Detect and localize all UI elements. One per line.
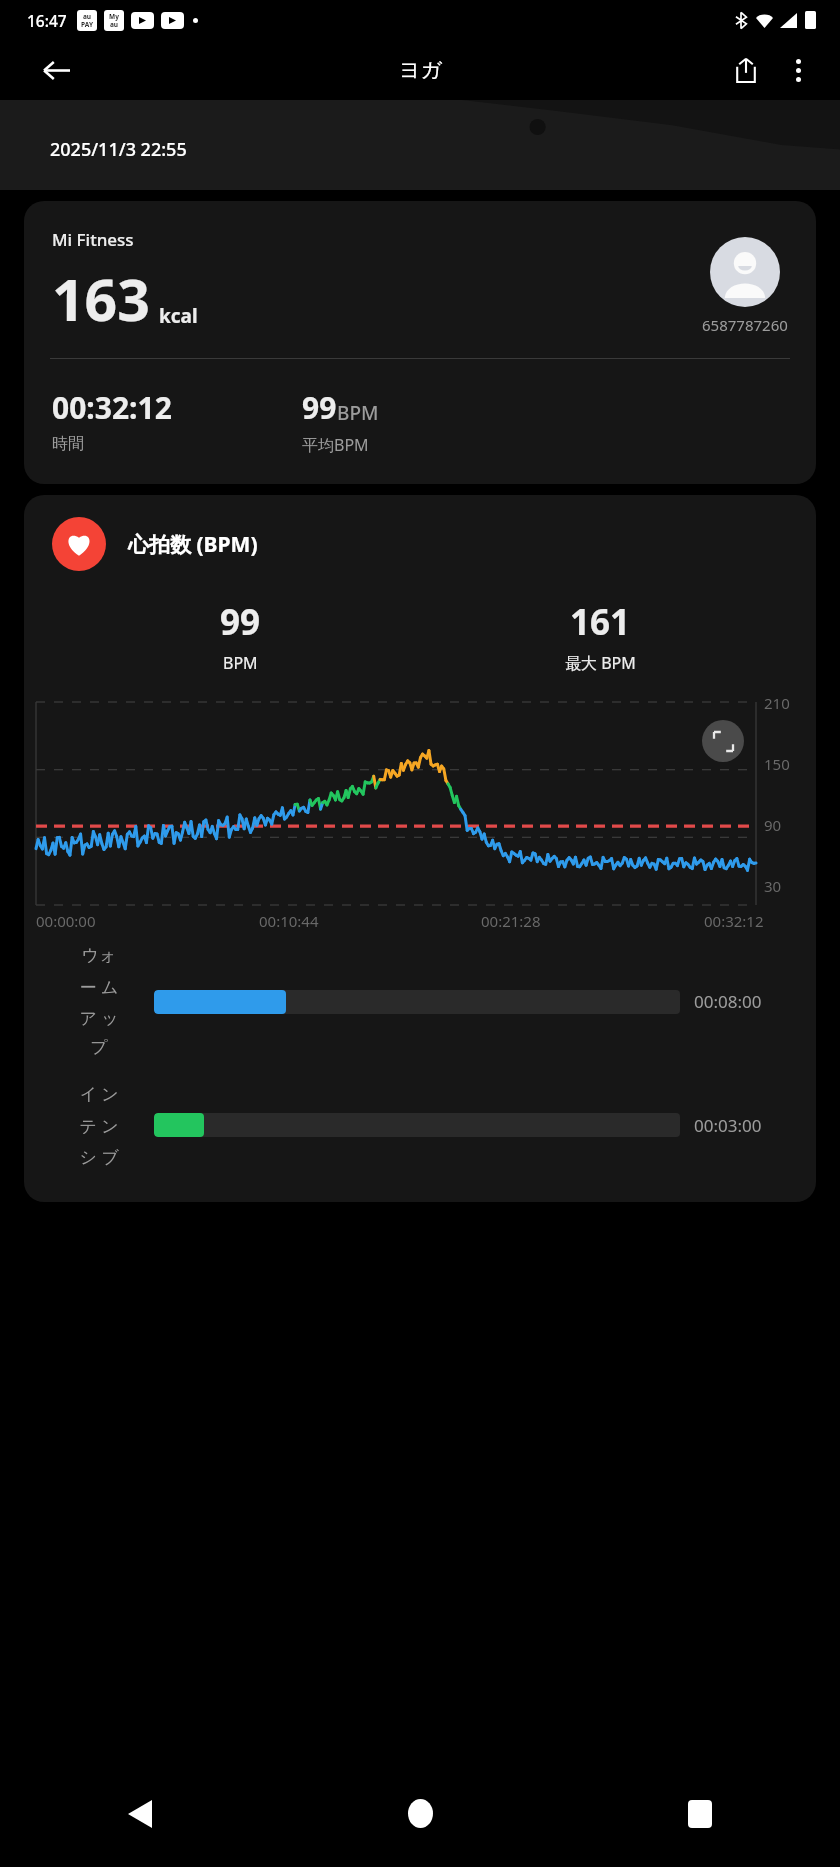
button[interactable]: Expand chart <box>702 720 744 762</box>
staticText: 00:00:00 <box>36 911 96 931</box>
button[interactable]: 心拍数 (BPM) <box>52 517 788 571</box>
staticText: 99 <box>302 387 337 428</box>
staticText: kcal <box>159 303 198 329</box>
button[interactable]: Mi Fitness <box>24 201 816 484</box>
staticText: 00:08:00 <box>694 990 792 1013</box>
button[interactable]: ウォ ー ム ア ッ プ <box>72 945 792 1058</box>
staticText: ウォ ー ム ア ッ プ <box>72 945 126 1058</box>
staticText: 90 <box>764 815 782 835</box>
button[interactable]: Home <box>280 1760 560 1867</box>
button[interactable]: More options <box>772 44 824 96</box>
button[interactable]: Profile <box>710 237 780 307</box>
staticText: au PAY <box>81 12 93 29</box>
staticText: Mi Fitness <box>52 228 134 251</box>
staticText: 16:47 <box>27 10 67 31</box>
staticText: 00:21:28 <box>481 911 541 931</box>
staticText: 00:10:44 <box>259 911 319 931</box>
staticText: BPM <box>337 400 379 426</box>
staticText: 99 <box>220 598 261 646</box>
button[interactable]: Back <box>0 1760 280 1867</box>
staticText: 150 <box>764 754 790 774</box>
staticText: 210 <box>764 693 790 713</box>
staticText: 00:03:00 <box>694 1114 792 1137</box>
staticText: 00:32:12 <box>704 911 764 931</box>
staticText: 30 <box>764 876 782 896</box>
staticText: 平均BPM <box>302 434 369 456</box>
staticText: ヨガ <box>399 57 442 83</box>
staticText: イ ン テ ン シ ブ <box>72 1082 126 1168</box>
staticText: 時間 <box>52 434 84 454</box>
staticText: My au <box>109 12 119 29</box>
staticText: 00:32:12 <box>52 387 172 428</box>
staticText: 2025/11/3 22:55 <box>50 137 187 162</box>
button[interactable]: イ ン テ ン シ ブ <box>72 1082 792 1168</box>
staticText: 161 <box>570 598 631 646</box>
staticText: 6587787260 <box>702 315 788 335</box>
button[interactable]: Back <box>30 44 82 96</box>
staticText: BPM <box>223 652 258 674</box>
staticText: 心拍数 (BPM) <box>128 530 258 559</box>
staticText: 163 <box>52 260 150 338</box>
button[interactable]: Recents <box>560 1760 840 1867</box>
button[interactable]: Share <box>720 44 772 96</box>
staticText: 最大 BPM <box>565 652 636 674</box>
